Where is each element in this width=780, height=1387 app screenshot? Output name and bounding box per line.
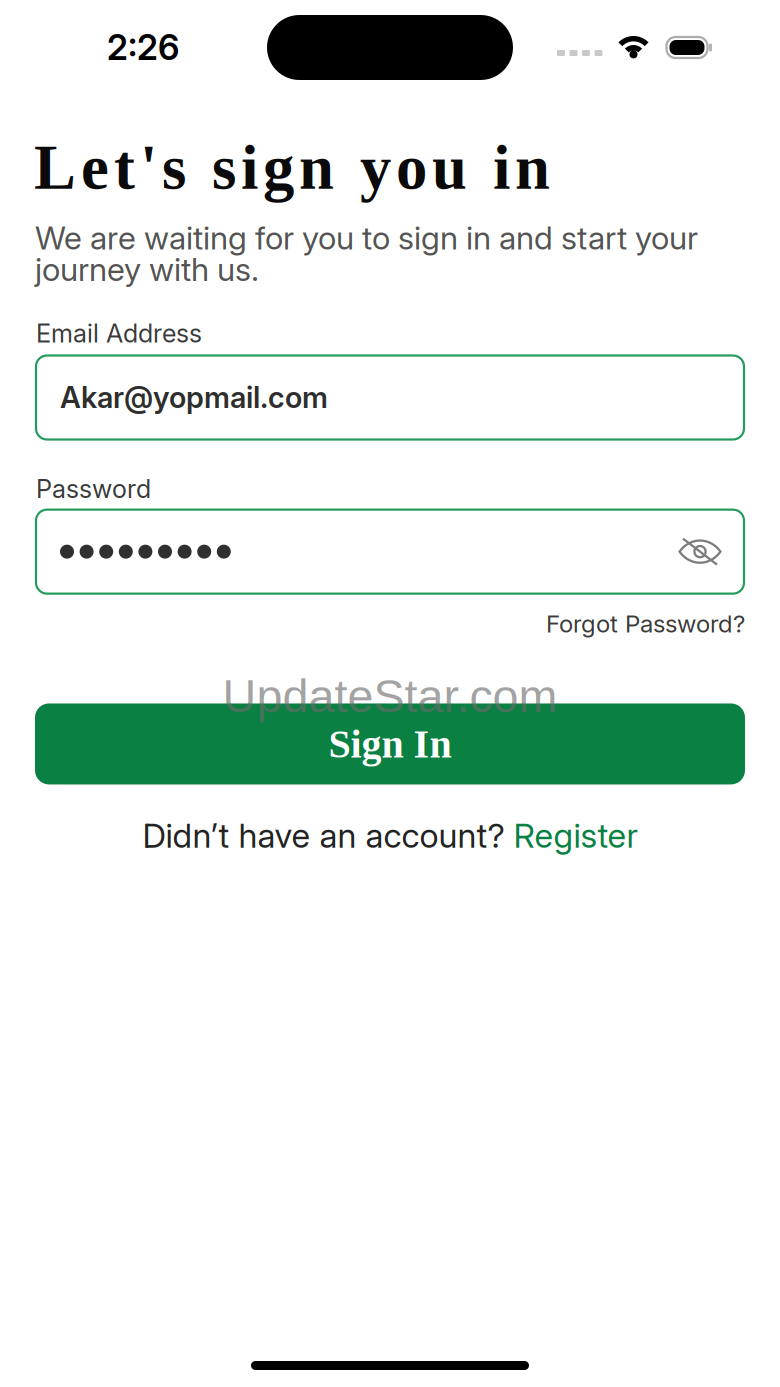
staticText: UpdateStar.com bbox=[222, 670, 557, 722]
button[interactable]: Forgot Password? bbox=[546, 609, 745, 638]
staticText: Register bbox=[513, 815, 637, 856]
staticText: Forgot Password? bbox=[546, 609, 745, 638]
staticText: journey with us. bbox=[35, 250, 259, 289]
staticText: 2:26 bbox=[107, 26, 179, 68]
button[interactable]: Sign In bbox=[35, 703, 745, 784]
staticText: Akar@yopmail.com bbox=[60, 380, 328, 415]
staticText: Email Address bbox=[36, 318, 202, 348]
button[interactable]: Show password bbox=[676, 533, 744, 571]
staticText: L e t ' s s i g n y o u i n bbox=[34, 133, 550, 202]
staticText: We are waiting for you to sign in and st… bbox=[35, 218, 698, 257]
staticText: Sign In bbox=[328, 722, 451, 766]
staticText: Password bbox=[36, 473, 151, 504]
staticText: Didn’t have an account? bbox=[142, 815, 513, 856]
button[interactable]: Register bbox=[513, 815, 637, 856]
